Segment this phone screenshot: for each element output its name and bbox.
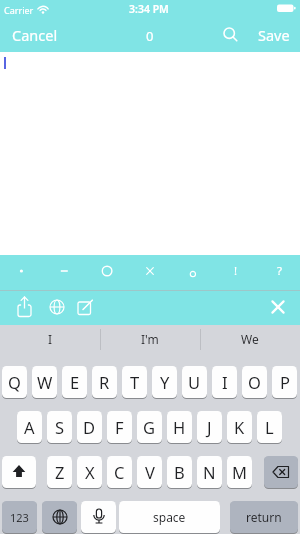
button[interactable]: return bbox=[230, 501, 298, 533]
staticText: G bbox=[143, 416, 156, 438]
staticText: space bbox=[153, 509, 186, 525]
staticText: ! bbox=[234, 263, 238, 279]
button[interactable]: C bbox=[107, 456, 132, 488]
button[interactable]: Y bbox=[152, 366, 177, 398]
staticText: H bbox=[173, 416, 186, 438]
staticText: Z bbox=[55, 461, 65, 483]
staticText: I bbox=[48, 331, 53, 347]
staticText: S bbox=[55, 416, 65, 438]
staticText: E bbox=[70, 371, 80, 393]
staticText: B bbox=[174, 461, 185, 483]
staticText: J bbox=[207, 416, 212, 438]
staticText: L bbox=[265, 416, 274, 438]
staticText: F bbox=[115, 416, 124, 438]
button[interactable]: I bbox=[212, 366, 237, 398]
button[interactable]: M bbox=[227, 456, 252, 488]
staticText: Q bbox=[8, 371, 21, 393]
button[interactable]: U bbox=[182, 366, 207, 398]
button[interactable]: G bbox=[137, 411, 162, 443]
button[interactable] bbox=[81, 501, 116, 533]
button[interactable]: V bbox=[137, 456, 162, 488]
button[interactable] bbox=[86, 255, 129, 290]
button[interactable]: Z bbox=[47, 456, 72, 488]
staticText: Save bbox=[258, 25, 290, 45]
button[interactable]: T bbox=[122, 366, 147, 398]
button[interactable]: L bbox=[257, 411, 282, 443]
button[interactable] bbox=[129, 255, 172, 290]
staticText: Carrier bbox=[4, 4, 34, 16]
button[interactable] bbox=[214, 255, 257, 290]
staticText: U bbox=[188, 371, 201, 393]
button[interactable] bbox=[220, 25, 242, 46]
button[interactable]: Save bbox=[252, 24, 292, 46]
button[interactable]: 123 bbox=[2, 501, 37, 533]
button[interactable]: S bbox=[47, 411, 72, 443]
button[interactable] bbox=[257, 255, 300, 290]
button[interactable]: Cancel bbox=[8, 24, 56, 46]
button[interactable] bbox=[71, 293, 100, 322]
button[interactable]: P bbox=[272, 366, 297, 398]
button[interactable]: We bbox=[200, 327, 300, 351]
button[interactable]: D bbox=[77, 411, 102, 443]
button[interactable]: O bbox=[242, 366, 267, 398]
staticText: C bbox=[114, 461, 125, 483]
staticText: K bbox=[234, 416, 245, 438]
staticText: N bbox=[203, 461, 216, 483]
button[interactable] bbox=[171, 255, 214, 290]
button[interactable] bbox=[43, 293, 71, 322]
staticText: 0 bbox=[146, 27, 154, 45]
staticText: I bbox=[222, 371, 228, 393]
button[interactable] bbox=[2, 456, 36, 488]
staticText: P bbox=[280, 371, 290, 393]
button[interactable]: I bbox=[0, 327, 100, 351]
staticText: T bbox=[130, 371, 140, 393]
staticText: O bbox=[248, 371, 261, 393]
staticText: 3:34 PM bbox=[129, 2, 169, 16]
staticText: return bbox=[246, 509, 282, 525]
button[interactable] bbox=[42, 501, 77, 533]
button[interactable] bbox=[264, 456, 298, 488]
button[interactable]: W bbox=[32, 366, 57, 398]
button[interactable]: E bbox=[62, 366, 87, 398]
button[interactable]: Q bbox=[2, 366, 27, 398]
button[interactable]: A bbox=[17, 411, 42, 443]
staticText: ? bbox=[277, 263, 282, 279]
button[interactable]: K bbox=[227, 411, 252, 443]
button[interactable]: J bbox=[197, 411, 222, 443]
button[interactable]: F bbox=[107, 411, 132, 443]
staticText: W bbox=[37, 371, 53, 393]
staticText: M bbox=[232, 461, 247, 483]
button[interactable] bbox=[0, 255, 43, 290]
button[interactable]: N bbox=[197, 456, 222, 488]
button[interactable]: B bbox=[167, 456, 192, 488]
staticText: Y bbox=[160, 371, 170, 393]
staticText: We bbox=[241, 331, 259, 347]
staticText: A bbox=[24, 416, 35, 438]
button[interactable]: X bbox=[77, 456, 102, 488]
button[interactable] bbox=[264, 293, 292, 321]
button[interactable]: I'm bbox=[100, 327, 200, 351]
staticText: R bbox=[99, 371, 110, 393]
button[interactable] bbox=[10, 293, 39, 322]
button[interactable]: space bbox=[119, 501, 220, 533]
staticText: V bbox=[145, 461, 155, 483]
staticText: I'm bbox=[141, 331, 159, 347]
staticText: Cancel bbox=[12, 25, 58, 45]
button[interactable]: H bbox=[167, 411, 192, 443]
staticText: X bbox=[85, 461, 95, 483]
button[interactable] bbox=[43, 255, 86, 290]
staticText: 123 bbox=[10, 510, 29, 525]
staticText: D bbox=[83, 416, 96, 438]
button[interactable]: R bbox=[92, 366, 117, 398]
